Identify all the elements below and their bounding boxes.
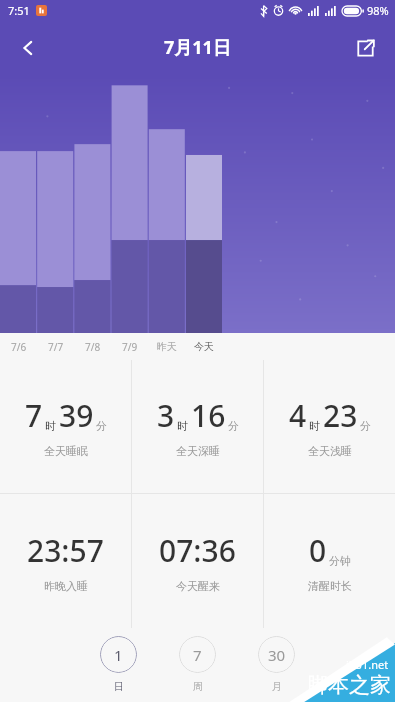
- button[interactable]: 23:57: [0, 494, 131, 628]
- staticText: 昨晚入睡: [44, 579, 88, 593]
- staticText: 分: [96, 419, 107, 433]
- staticText: 07:36: [159, 530, 236, 571]
- staticText: 23:57: [27, 530, 104, 571]
- staticText: 7月11日: [164, 35, 231, 60]
- button[interactable]: 4: [264, 360, 395, 493]
- staticText: 16: [191, 395, 226, 436]
- button[interactable]: 7/6: [0, 333, 37, 360]
- staticText: 39: [59, 395, 94, 436]
- button[interactable]: 7/7: [37, 333, 74, 360]
- staticText: 7: [193, 645, 202, 665]
- staticText: 时: [177, 419, 188, 433]
- button[interactable]: 昨天: [148, 333, 185, 360]
- staticText: 98%: [367, 3, 389, 18]
- staticText: 时: [309, 419, 320, 433]
- staticText: 时: [45, 419, 56, 433]
- staticText: 7/8: [85, 340, 101, 354]
- staticText: 昨天: [157, 340, 177, 353]
- staticText: 4: [289, 395, 307, 436]
- button[interactable]: Back: [6, 26, 50, 70]
- button[interactable]: 30: [254, 636, 299, 693]
- staticText: 7/9: [122, 340, 138, 354]
- staticText: 3: [157, 395, 175, 436]
- staticText: 全天睡眠: [44, 444, 88, 458]
- staticText: 日: [114, 680, 124, 693]
- staticText: 7/7: [48, 340, 64, 354]
- button[interactable]: 7: [175, 636, 220, 693]
- staticText: 分: [360, 419, 371, 433]
- staticText: 月: [272, 680, 282, 693]
- staticText: 分钟: [329, 554, 351, 568]
- staticText: jb51.net: [346, 657, 389, 672]
- staticText: 周: [193, 680, 203, 693]
- staticText: 今天醒来: [176, 579, 220, 593]
- staticText: 30: [268, 645, 286, 665]
- staticText: 23: [323, 395, 358, 436]
- button[interactable]: 7/8: [74, 333, 111, 360]
- staticText: 1: [114, 645, 123, 665]
- staticText: 脚本之家: [307, 672, 391, 698]
- staticText: 今天: [194, 340, 214, 353]
- staticText: 7: [25, 395, 43, 436]
- button[interactable]: 3: [132, 360, 263, 493]
- button[interactable]: 7: [0, 360, 131, 493]
- staticText: 清醒时长: [308, 579, 352, 593]
- staticText: 7:51: [8, 3, 30, 18]
- button[interactable]: 今天: [185, 333, 222, 360]
- button[interactable]: 07:36: [132, 494, 263, 628]
- staticText: 7/6: [11, 340, 27, 354]
- staticText: 0: [309, 530, 327, 571]
- button[interactable]: 1: [96, 636, 141, 693]
- staticText: 分: [228, 419, 239, 433]
- button[interactable]: Share: [343, 26, 387, 70]
- staticText: 全天浅睡: [308, 444, 352, 458]
- staticText: 全天深睡: [176, 444, 220, 458]
- button[interactable]: 0: [264, 494, 395, 628]
- button[interactable]: 7/9: [111, 333, 148, 360]
